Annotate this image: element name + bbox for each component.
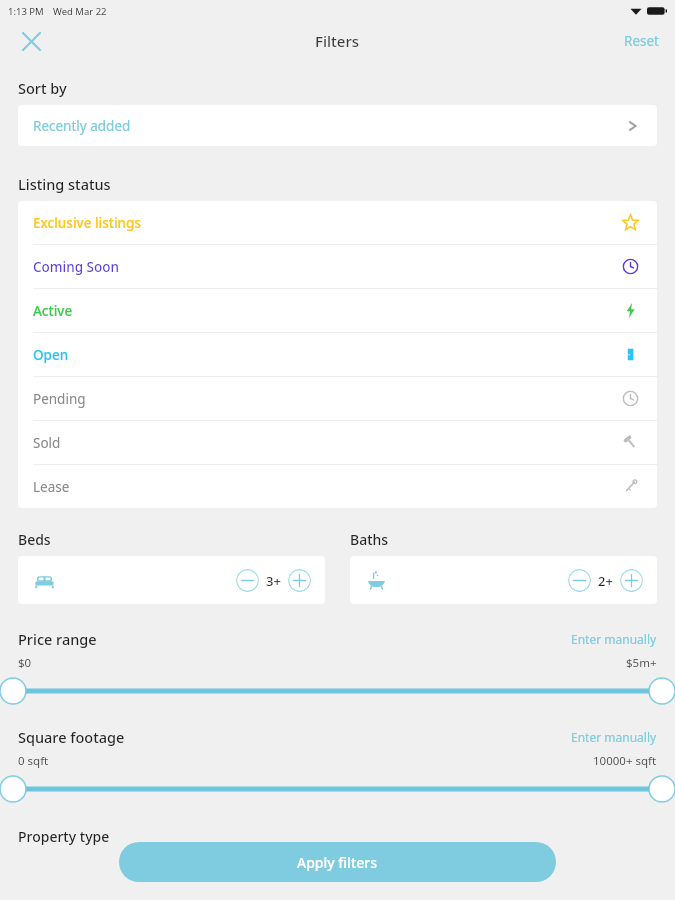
staticText: Lease <box>33 478 70 496</box>
button[interactable]: Exclusive listings <box>18 201 657 245</box>
button[interactable]: Coming Soon <box>18 245 657 289</box>
staticText: Coming Soon <box>33 258 119 276</box>
staticText: Listing status <box>18 174 111 194</box>
button[interactable]: Pending <box>18 377 657 421</box>
staticText: Pending <box>33 390 86 408</box>
staticText: Recently added <box>33 117 131 135</box>
staticText: $0 <box>18 655 32 671</box>
button[interactable]: Close <box>14 24 48 58</box>
button[interactable]: Enter manually <box>571 631 657 647</box>
staticText: Square footage <box>18 727 125 747</box>
staticText: $5m+ <box>626 655 657 671</box>
staticText: Baths <box>350 530 389 549</box>
button[interactable]: Sold <box>18 421 657 465</box>
staticText: Enter manually <box>571 729 657 745</box>
staticText: Sort by <box>18 78 67 98</box>
staticText: Apply filters <box>297 853 378 872</box>
button[interactable]: Enter manually <box>571 729 657 745</box>
button[interactable]: Square footage range slider <box>0 775 675 803</box>
staticText: 3+ <box>266 572 281 590</box>
staticText: Open <box>33 346 69 364</box>
staticText: Enter manually <box>571 631 657 647</box>
staticText: Beds <box>18 530 51 549</box>
button[interactable]: Decrease <box>236 569 259 592</box>
staticText: 0 sqft <box>18 753 49 769</box>
staticText: Property type <box>18 827 110 846</box>
button[interactable]: Reset <box>608 26 675 56</box>
staticText: 10000+ sqft <box>593 753 657 769</box>
button[interactable]: Increase <box>288 569 311 592</box>
staticText: Filters <box>315 31 360 51</box>
button[interactable]: Decrease <box>568 569 591 592</box>
button[interactable]: Recently added <box>18 105 657 146</box>
staticText: Price range <box>18 629 97 649</box>
button[interactable]: Active <box>18 289 657 333</box>
staticText: Reset <box>624 32 659 50</box>
staticText: Sold <box>33 434 61 452</box>
staticText: 2+ <box>598 572 613 590</box>
button[interactable]: Price range range slider <box>0 677 675 705</box>
staticText: Wed Mar 22 <box>53 5 107 18</box>
button[interactable]: Apply filters <box>119 842 556 882</box>
staticText: Exclusive listings <box>33 214 141 232</box>
button[interactable]: Lease <box>18 465 657 508</box>
button[interactable]: Open <box>18 333 657 377</box>
staticText: Active <box>33 302 73 320</box>
staticText: 1:13 PM <box>8 5 44 18</box>
button[interactable]: Increase <box>620 569 643 592</box>
